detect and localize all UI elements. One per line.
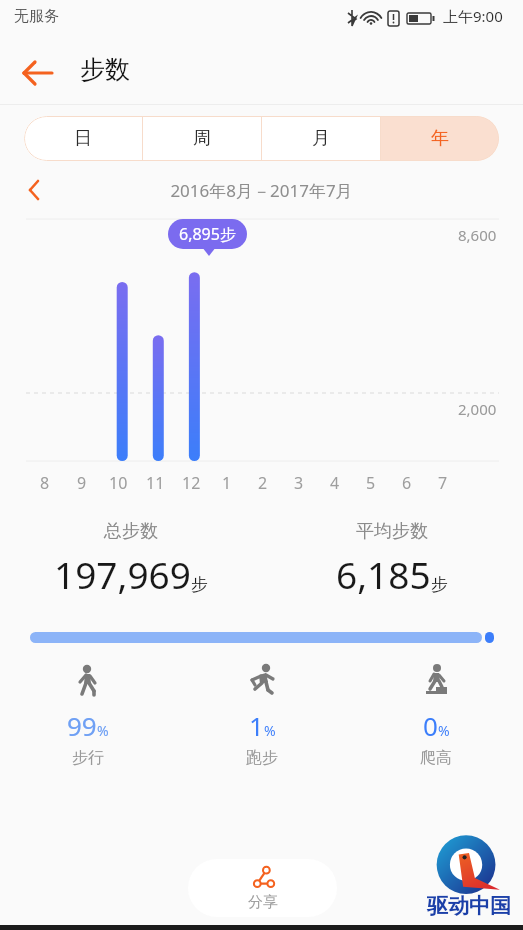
staticText: 驱动中国 [427,893,511,919]
staticText: 11 [146,472,165,494]
staticText: 2 [258,472,268,494]
staticText: 2,000 [458,399,497,419]
staticText: 爬高 [420,748,452,768]
button[interactable]: 月 [261,116,380,161]
staticText: % [97,721,109,740]
staticText: 6,895步 [179,223,236,245]
staticText: % [438,721,450,740]
staticText: 8,600 [458,225,497,245]
staticText: 分享 [248,893,278,912]
button[interactable]: Back [16,50,62,96]
staticText: 6 [402,472,412,494]
staticText: 步行 [72,748,104,768]
staticText: 7 [438,472,448,494]
button[interactable]: 1 [175,660,349,768]
staticText: % [264,721,276,740]
staticText: 步 [431,574,448,595]
staticText: 步数 [80,54,130,85]
button[interactable]: 年 [380,116,499,161]
staticText: 6,185 [336,549,431,599]
button[interactable]: 日 [24,116,142,161]
staticText: 10 [109,472,128,494]
button[interactable]: 分享 [188,859,337,917]
staticText: 平均步数 [356,520,428,543]
staticText: 跑步 [246,748,278,768]
staticText: 年 [431,127,449,150]
staticText: 8 [40,472,50,494]
staticText: 197,969 [54,549,191,599]
staticText: 12 [182,472,201,494]
staticText: 1 [222,472,232,494]
staticText: 月 [312,127,330,150]
staticText: 5 [366,472,376,494]
staticText: 日 [74,127,92,150]
staticText: 上午9:00 [443,6,503,26]
staticText: 2016年8月－2017年7月 [0,179,523,202]
button[interactable]: 周 [142,116,261,161]
staticText: 步 [191,574,208,595]
button[interactable]: 0 [349,660,523,768]
button[interactable]: Previous period [14,170,54,210]
staticText: 4 [330,472,340,494]
staticText: 99 [67,708,97,743]
button[interactable]: 99 [0,660,175,768]
staticText: 1 [249,708,264,743]
staticText: 0 [423,708,438,743]
staticText: 总步数 [104,520,158,543]
staticText: 9 [77,472,87,494]
staticText: 无服务 [14,7,59,26]
staticText: 3 [294,472,304,494]
staticText: 周 [193,127,211,150]
